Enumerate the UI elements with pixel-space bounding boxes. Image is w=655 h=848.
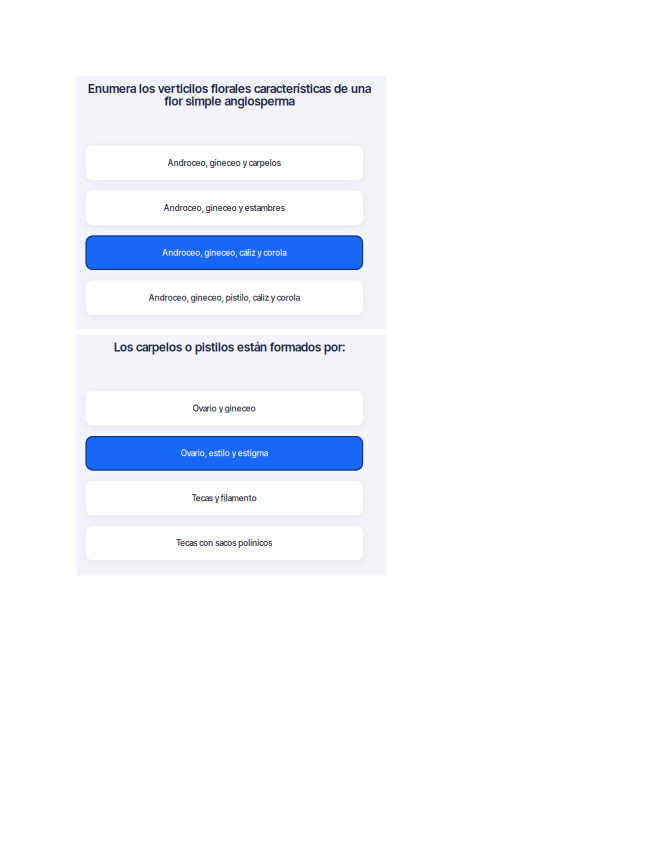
staticText: Androceo, gineceo y carpelos [168, 158, 281, 168]
staticText: Androceo, gineceo y estambres [164, 203, 285, 213]
button[interactable]: Androceo, gineceo y carpelos [86, 146, 363, 180]
button[interactable]: Ovario, estilo y estigma [86, 436, 363, 470]
button[interactable]: Androceo, gineceo y estambres [86, 191, 363, 225]
staticText: Androceo, gineceo, pistilo, cáliz y coro… [149, 293, 300, 303]
staticText: Tecas con sacos polínicos [176, 538, 272, 548]
button[interactable]: Tecas con sacos polínicos [86, 526, 363, 560]
staticText: Tecas y filamento [192, 493, 257, 503]
button[interactable]: Tecas y filamento [86, 481, 363, 515]
staticText: Ovario y gineceo [193, 403, 256, 413]
staticText: Los carpelos o pistilos están formados p… [114, 340, 345, 354]
button[interactable]: Ovario y gineceo [86, 391, 363, 426]
staticText: Enumera los verticilos florales caracter… [88, 81, 371, 108]
button[interactable]: Androceo, gineceo, pistilo, cáliz y coro… [86, 280, 363, 315]
staticText: Androceo, gineceo, cáliz y corola [162, 248, 286, 258]
button[interactable]: Androceo, gineceo, cáliz y corola [86, 235, 363, 270]
staticText: Ovario, estilo y estigma [181, 448, 268, 458]
